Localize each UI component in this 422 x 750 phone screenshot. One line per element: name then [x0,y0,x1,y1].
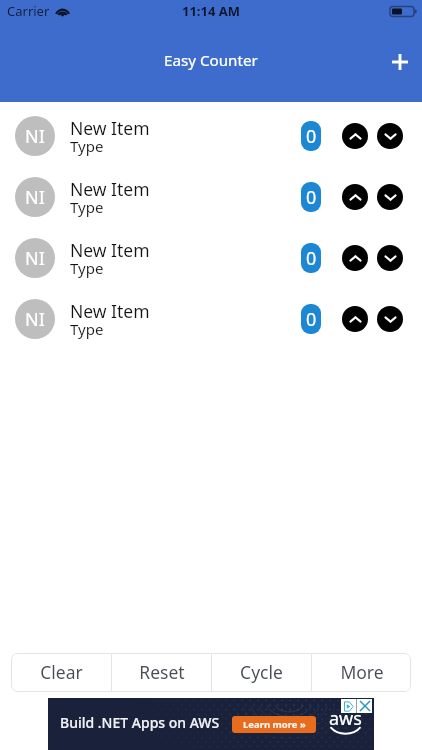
staticText: 11:14 AM [182,2,241,20]
button[interactable]: Build .NET Apps on AWS [48,698,374,750]
button[interactable]: Learn more » [232,716,316,733]
staticText: Build .NET Apps on AWS [60,713,220,732]
button[interactable]: Increase count [342,306,368,332]
button[interactable]: Increase count [342,184,368,210]
button[interactable]: Reset [112,653,211,692]
staticText: Type [70,258,104,278]
button[interactable]: Cycle [212,653,311,692]
button[interactable]: Increase count [342,123,368,149]
button[interactable]: Add item [377,39,422,84]
staticText: NI [25,185,45,210]
staticText: Easy Counter [164,50,258,71]
staticText: NI [25,307,45,332]
button[interactable]: Decrease count [377,306,403,332]
staticText: Type [70,136,104,156]
button[interactable]: 0 [301,182,321,212]
button[interactable]: Clear [11,653,111,692]
staticText: Learn more » [243,718,306,731]
button[interactable]: 0 [301,304,321,334]
staticText: Type [70,197,104,217]
button[interactable]: Decrease count [377,245,403,271]
button[interactable]: AdChoices [341,699,356,713]
staticText: 0 [306,246,317,271]
staticText: New Item [70,299,150,323]
button[interactable]: NI [0,227,422,288]
button[interactable]: Decrease count [377,184,403,210]
staticText: Reset [139,660,185,684]
button[interactable]: More [312,653,411,692]
staticText: Cycle [240,660,283,684]
staticText: Clear [40,660,83,684]
staticText: aws [329,706,362,731]
staticText: Type [70,319,104,339]
button[interactable]: NI [0,105,422,166]
staticText: 0 [306,185,317,210]
staticText: 0 [306,307,317,332]
staticText: New Item [70,116,150,140]
staticText: NI [25,246,45,271]
staticText: More [340,660,384,684]
button[interactable]: Decrease count [377,123,403,149]
staticText: 0 [306,124,317,149]
button[interactable]: NI [0,288,422,349]
staticText: New Item [70,177,150,201]
button[interactable]: 0 [301,243,321,273]
button[interactable]: Increase count [342,245,368,271]
staticText: NI [25,124,45,149]
button[interactable]: Close ad [357,699,372,713]
staticText: New Item [70,238,150,262]
button[interactable]: NI [0,166,422,227]
staticText: Carrier [7,2,50,20]
button[interactable]: 0 [301,121,321,151]
